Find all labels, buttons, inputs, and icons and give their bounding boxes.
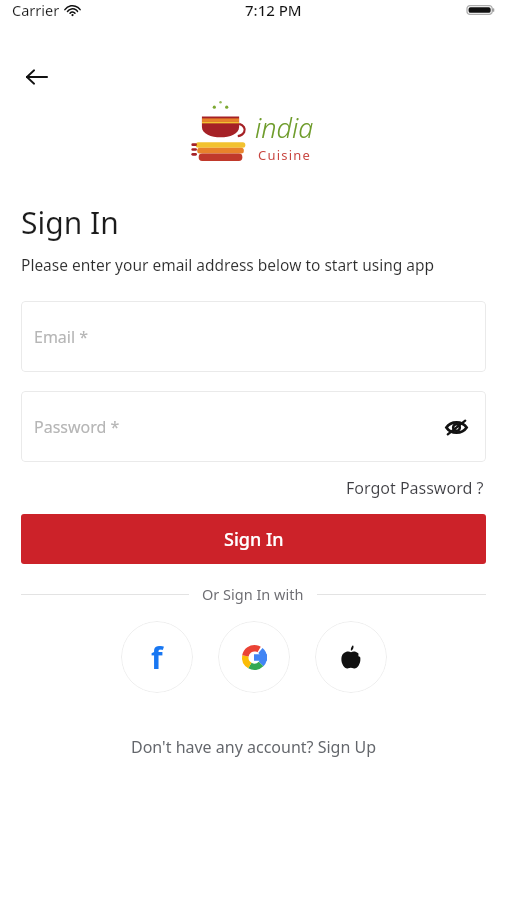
staticText: Please enter your email address below to…: [21, 254, 435, 275]
button[interactable]: Sign In: [21, 514, 486, 564]
staticText: india: [255, 109, 314, 146]
staticText: Don't have any account? Sign Up: [131, 736, 376, 758]
button[interactable]: Back: [14, 54, 60, 100]
button[interactable]: Sign in with Facebook: [121, 621, 193, 693]
staticText: Carrier: [12, 0, 60, 20]
button[interactable]: Sign in with Apple: [315, 621, 387, 693]
staticText: Or Sign In with: [202, 584, 304, 604]
staticText: Sign In: [21, 202, 119, 243]
button[interactable]: Password *: [21, 391, 486, 462]
button[interactable]: Email *: [21, 301, 486, 372]
staticText: f: [151, 637, 163, 678]
button[interactable]: Show password: [436, 407, 476, 447]
staticText: Forgot Password ?: [346, 477, 484, 499]
staticText: Email *: [34, 326, 89, 348]
staticText: 7:12 PM: [245, 0, 302, 20]
button[interactable]: Forgot Password ?: [344, 475, 486, 501]
button[interactable]: Don't have any account? Sign Up: [127, 733, 380, 761]
staticText: Password *: [34, 416, 120, 438]
staticText: Sign In: [224, 527, 284, 552]
staticText: Cuisine: [258, 146, 311, 164]
button[interactable]: Sign in with Google: [218, 621, 290, 693]
